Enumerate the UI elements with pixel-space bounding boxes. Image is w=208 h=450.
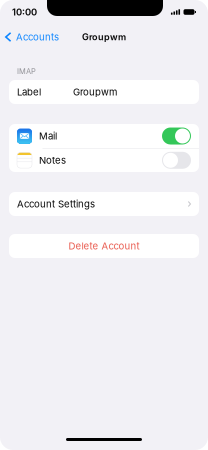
button[interactable]: Accounts [0, 28, 64, 46]
staticText: Mail [39, 130, 57, 142]
staticText: Delete Account [68, 240, 139, 252]
staticText: Account Settings [17, 198, 95, 210]
staticText: Notes [39, 154, 66, 166]
staticText: Label [17, 86, 41, 98]
staticText: IMAP [17, 67, 36, 76]
staticText: Groupwm [82, 31, 126, 42]
staticText: Groupwm [73, 86, 117, 98]
staticText: Accounts [16, 31, 59, 43]
button[interactable]: Account Settings [9, 192, 199, 216]
button[interactable]: Delete Account [9, 234, 199, 258]
staticText: 10:00 [12, 6, 37, 18]
